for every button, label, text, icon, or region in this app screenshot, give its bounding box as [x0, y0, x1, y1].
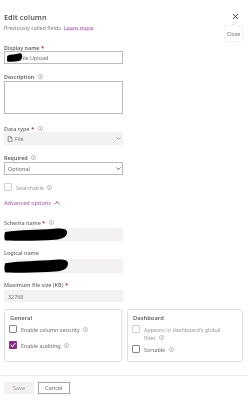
- staticText: Maximum file size (KB): [4, 281, 64, 288]
- button[interactable]: File: [4, 132, 123, 145]
- staticText: Enable auditing: [21, 342, 61, 349]
- staticText: Display name: [4, 44, 40, 51]
- staticText: Edit column: [4, 12, 47, 22]
- staticText: Sortable: [144, 346, 166, 353]
- button[interactable]: Advanced options: [4, 199, 60, 207]
- staticText: Description: [4, 73, 35, 80]
- button[interactable]: [4, 81, 123, 114]
- staticText: Previously called fields.: [4, 24, 64, 31]
- button[interactable]: Enable auditing: [9, 341, 69, 349]
- staticText: Learn more: [64, 24, 94, 31]
- staticText: File Upload: [20, 54, 49, 61]
- button[interactable]: Save: [4, 382, 34, 394]
- staticText: Enable column security: [21, 326, 80, 333]
- button[interactable]: Learn more: [64, 24, 94, 31]
- button[interactable]: [4, 228, 123, 241]
- button[interactable]: Close: [225, 26, 242, 41]
- staticText: Appears in dashboard's global: [144, 326, 221, 333]
- staticText: Dashboard: [133, 314, 164, 322]
- staticText: Data type: [4, 125, 30, 132]
- button[interactable]: Optional: [4, 162, 123, 175]
- staticText: *: [65, 281, 69, 289]
- staticText: Required: [4, 154, 28, 161]
- staticText: Close: [227, 30, 241, 37]
- staticText: Searchable: [16, 184, 44, 191]
- button[interactable]: 32768: [4, 290, 123, 302]
- staticText: filter: [144, 334, 156, 341]
- staticText: *: [31, 125, 35, 133]
- button[interactable]: Cancel: [38, 382, 70, 394]
- button[interactable]: [4, 259, 123, 273]
- staticText: Save: [13, 384, 26, 392]
- staticText: *: [41, 44, 45, 52]
- button[interactable]: Searchable: [4, 183, 52, 191]
- staticText: 32768: [8, 293, 24, 300]
- staticText: Logical name: [4, 249, 39, 256]
- button[interactable]: Appears in dashboard's global: [132, 325, 221, 340]
- staticText: Cancel: [45, 384, 63, 392]
- staticText: File: [15, 135, 24, 142]
- staticText: General: [10, 314, 33, 322]
- button[interactable]: Close: [228, 9, 242, 23]
- staticText: *: [42, 219, 46, 227]
- button[interactable]: Sortable: [132, 345, 174, 353]
- staticText: Advanced options: [4, 199, 51, 207]
- staticText: Optional: [8, 165, 30, 172]
- button[interactable]: File Upload: [4, 51, 123, 64]
- staticText: Schema name: [4, 219, 41, 226]
- button[interactable]: Enable column security: [9, 325, 88, 333]
